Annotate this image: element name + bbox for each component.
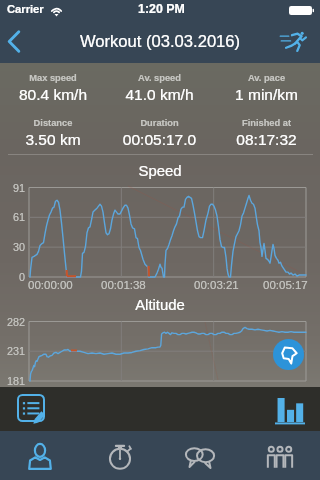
staticText: 282 xyxy=(0,316,25,328)
button[interactable]: Notes xyxy=(8,389,46,427)
staticText: 00:01:38 xyxy=(101,279,146,292)
staticText: Speed xyxy=(0,163,320,180)
staticText: 08:17:32 xyxy=(213,131,320,148)
staticText: 1:20 PM xyxy=(138,2,185,16)
button[interactable]: Charts xyxy=(271,392,309,430)
staticText: 00:00:00 xyxy=(28,279,73,292)
staticText: 00:05:17.0 xyxy=(106,131,213,148)
staticText: Av. pace xyxy=(213,73,320,83)
staticText: Duration xyxy=(106,118,213,128)
staticText: Av. speed xyxy=(106,73,213,83)
button[interactable]: Back xyxy=(0,20,42,63)
button[interactable]: Start workout xyxy=(276,20,320,63)
staticText: 91 xyxy=(0,182,25,194)
staticText: 231 xyxy=(0,345,25,357)
staticText: 00:05:17 xyxy=(263,279,308,292)
staticText: Max speed xyxy=(0,73,106,83)
staticText: 1 min/km xyxy=(213,86,320,103)
button[interactable]: Friends xyxy=(240,431,320,480)
staticText: 41.0 km/h xyxy=(106,86,213,103)
button[interactable]: Stopwatch xyxy=(80,431,160,480)
staticText: Carrier xyxy=(7,3,44,16)
staticText: 0 xyxy=(0,271,25,283)
button[interactable]: Show route map xyxy=(273,339,304,370)
staticText: 61 xyxy=(0,211,25,223)
staticText: 181 xyxy=(0,375,25,387)
staticText: Finished at xyxy=(213,118,320,128)
staticText: 80.4 km/h xyxy=(0,86,106,103)
staticText: Altitude xyxy=(0,297,320,314)
staticText: 30 xyxy=(0,241,25,253)
staticText: 00:03:21 xyxy=(194,279,239,292)
staticText: Distance xyxy=(0,118,106,128)
button[interactable]: Profile xyxy=(0,431,80,480)
button[interactable]: Messages xyxy=(160,431,240,480)
staticText: 3.50 km xyxy=(0,131,106,148)
staticText: Workout (03.03.2016) xyxy=(0,32,320,51)
